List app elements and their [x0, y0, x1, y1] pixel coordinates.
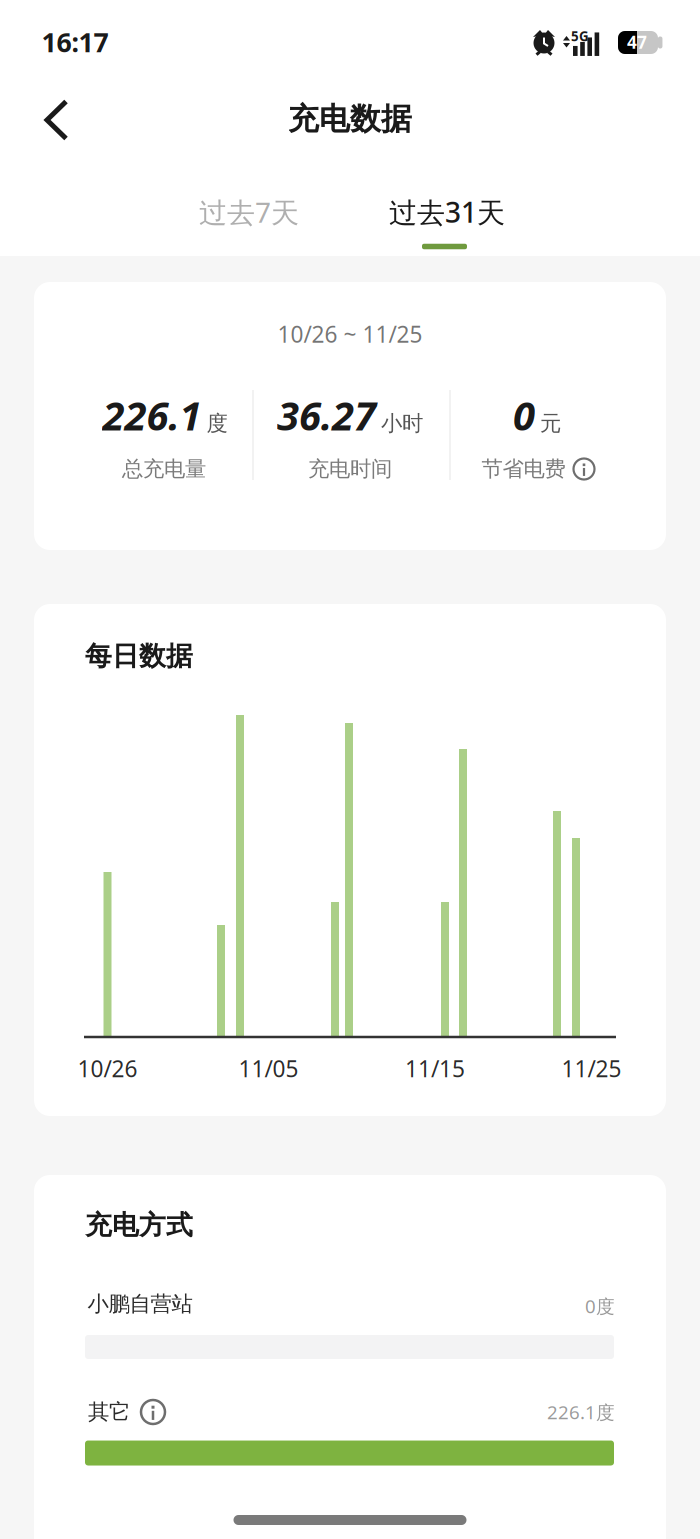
staticText: 元 — [540, 410, 561, 436]
staticText: 节省电费 — [481, 456, 565, 482]
staticText: 0度 — [585, 1294, 615, 1318]
staticText: 总充电量 — [122, 456, 206, 482]
staticText: 226.1度 — [547, 1400, 615, 1424]
button[interactable]: 过去7天 — [189, 183, 309, 241]
staticText: 度 — [206, 410, 227, 436]
staticText: 16:17 — [41, 24, 108, 60]
staticText: 11/05 — [238, 1053, 298, 1083]
staticText: 0 — [513, 388, 535, 441]
staticText: 11/25 — [561, 1053, 621, 1083]
staticText: 过去31天 — [389, 193, 505, 231]
staticText: 小时 — [381, 410, 423, 436]
button[interactable]: Back — [35, 98, 79, 142]
staticText: 10/26 — [77, 1053, 137, 1083]
staticText: 10/26 ~ 11/25 — [277, 319, 422, 349]
staticText: 过去7天 — [199, 193, 299, 231]
staticText: 其它 — [88, 1399, 130, 1425]
staticText: 11/15 — [405, 1053, 465, 1083]
staticText: 每日数据 — [85, 640, 193, 672]
staticText: 5G — [571, 27, 589, 45]
staticText: 充电时间 — [308, 456, 392, 482]
staticText: 充电数据 — [288, 100, 412, 138]
staticText: 47 — [627, 30, 647, 53]
button[interactable]: 过去31天 — [379, 183, 515, 241]
staticText: 36.27 — [277, 388, 376, 441]
button[interactable]: 节省电费说明 — [573, 458, 594, 479]
staticText: 充电方式 — [85, 1209, 193, 1241]
staticText: 小鹏自营站 — [87, 1291, 192, 1317]
button[interactable]: 其它说明 — [141, 1400, 165, 1424]
staticText: 226.1 — [102, 388, 201, 441]
